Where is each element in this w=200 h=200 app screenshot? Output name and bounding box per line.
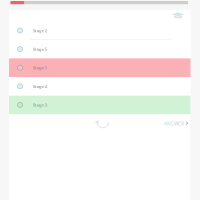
staticText: Stage 4 [33, 83, 47, 89]
button[interactable]: Undo [94, 115, 111, 130]
button[interactable]: ANSWER [164, 117, 190, 127]
button[interactable]: Course [172, 12, 190, 19]
button[interactable]: Stage 1 [9, 58, 190, 77]
staticText: ANSWER [164, 120, 184, 127]
staticText: Stage 3 [33, 102, 47, 108]
button[interactable]: Stage 5 [9, 40, 190, 58]
staticText: Stage 1 [33, 65, 47, 71]
button[interactable]: Stage 4 [9, 77, 190, 96]
staticText: Stage 2 [33, 28, 47, 33]
button[interactable]: Stage 2 [9, 21, 190, 40]
staticText: Stage 5 [33, 46, 47, 52]
button[interactable]: Stage 3 [9, 96, 190, 114]
